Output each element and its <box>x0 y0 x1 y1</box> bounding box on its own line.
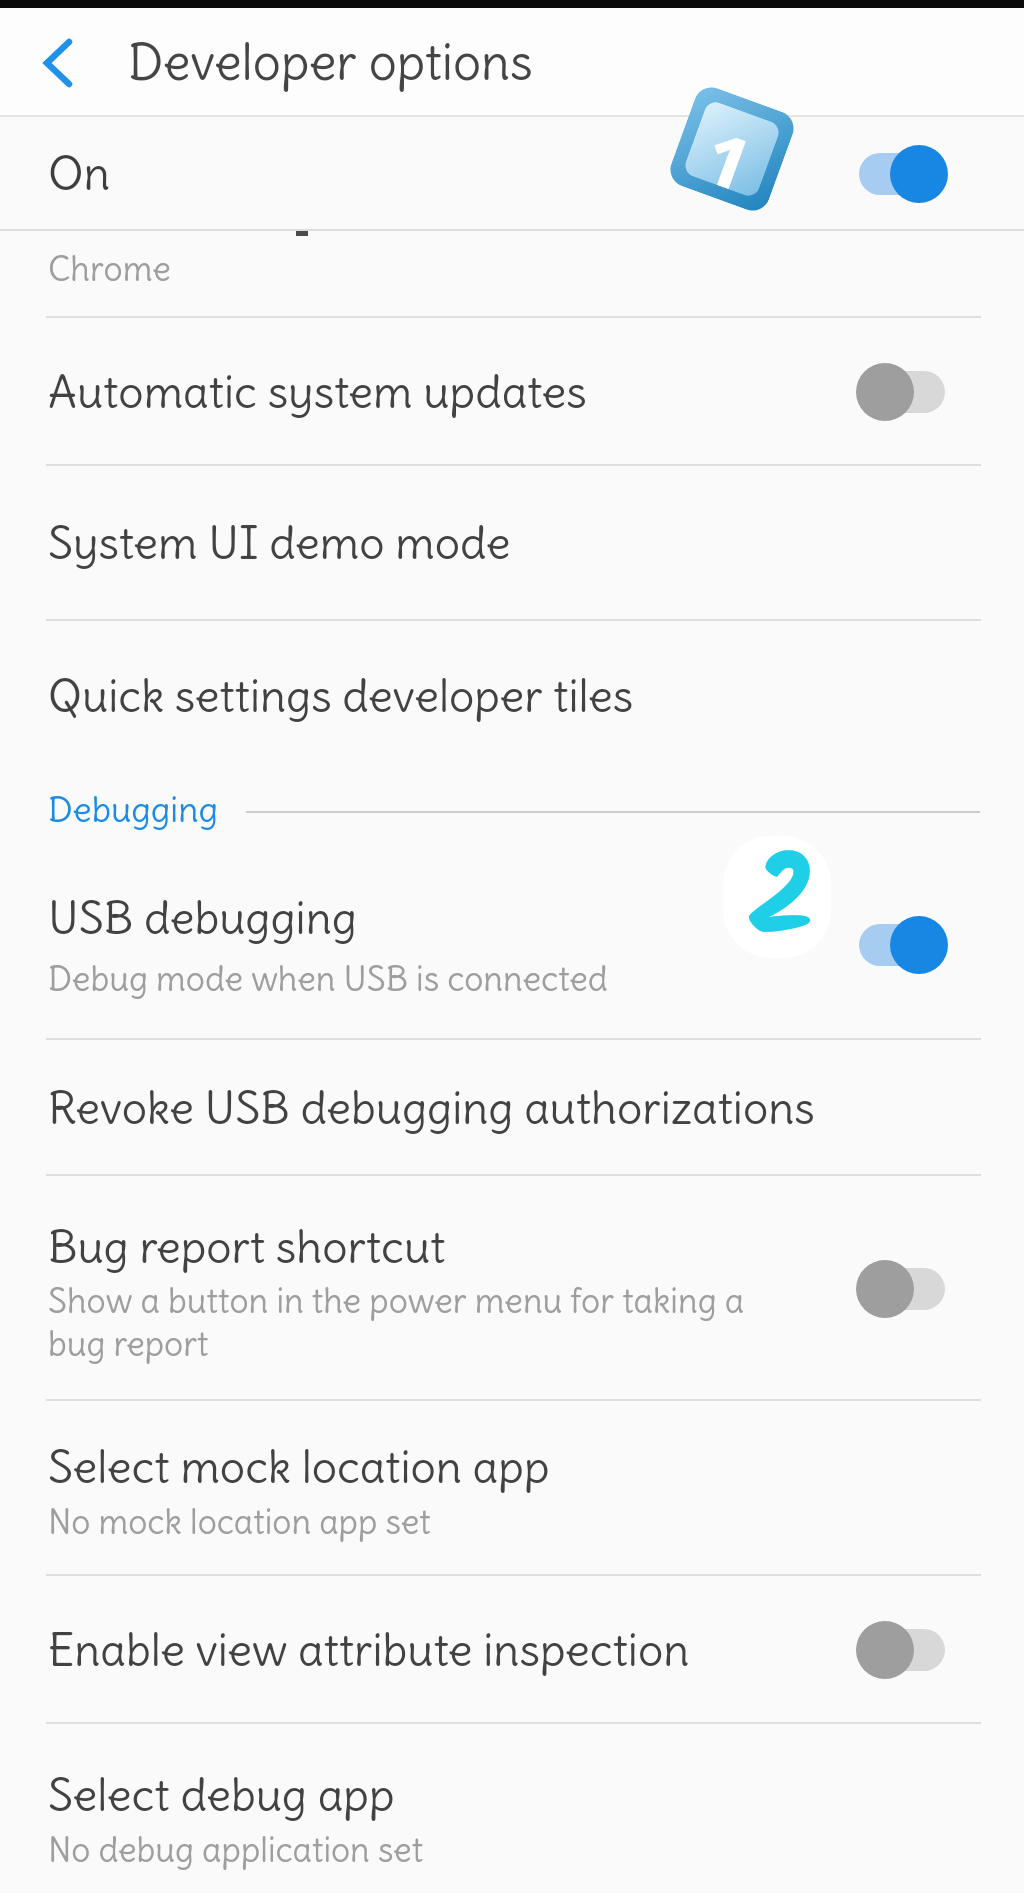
staticText: Revoke USB debugging authorizations <box>48 1080 815 1137</box>
button[interactable] <box>44 39 72 87</box>
button[interactable]: On <box>0 117 1024 231</box>
staticText: Chrome <box>48 247 171 290</box>
button[interactable]: Quick settings developer tiles <box>0 621 1024 771</box>
staticText: USB debugging <box>48 890 357 947</box>
staticText: 1 <box>698 105 767 193</box>
button[interactable]: Bug report shortcut <box>0 1176 1024 1401</box>
button[interactable]: Chrome <box>0 231 1024 318</box>
staticText: No mock location app set <box>48 1500 431 1543</box>
button[interactable]: USB debugging <box>0 850 1024 1040</box>
staticText: 2 <box>747 836 822 938</box>
staticText: Debug mode when USB is connected <box>48 957 608 1000</box>
button[interactable]: Enable view attribute inspection <box>0 1576 1024 1724</box>
button[interactable]: Select debug app <box>0 1724 1024 1893</box>
staticText: Show a button in the power menu for taki… <box>48 1279 745 1322</box>
staticText: Developer options <box>128 31 533 94</box>
staticText: bug report <box>48 1322 209 1365</box>
staticText: Enable view attribute inspection <box>48 1622 690 1679</box>
button[interactable]: Automatic system updates <box>0 318 1024 466</box>
staticText: No debug application set <box>48 1828 424 1871</box>
staticText: Automatic system updates <box>48 364 587 421</box>
staticText: Select debug app <box>48 1767 395 1824</box>
button[interactable]: System UI demo mode <box>0 466 1024 621</box>
staticText: Quick settings developer tiles <box>48 668 634 725</box>
button[interactable]: Select mock location app <box>0 1406 1024 1576</box>
button[interactable]: Revoke USB debugging authorizations <box>0 1040 1024 1176</box>
staticText: Bug report shortcut <box>48 1219 446 1276</box>
staticText: Debugging <box>48 787 218 831</box>
staticText: On <box>48 145 111 203</box>
staticText: Select mock location app <box>48 1439 550 1496</box>
staticText: System UI demo mode <box>48 515 511 572</box>
